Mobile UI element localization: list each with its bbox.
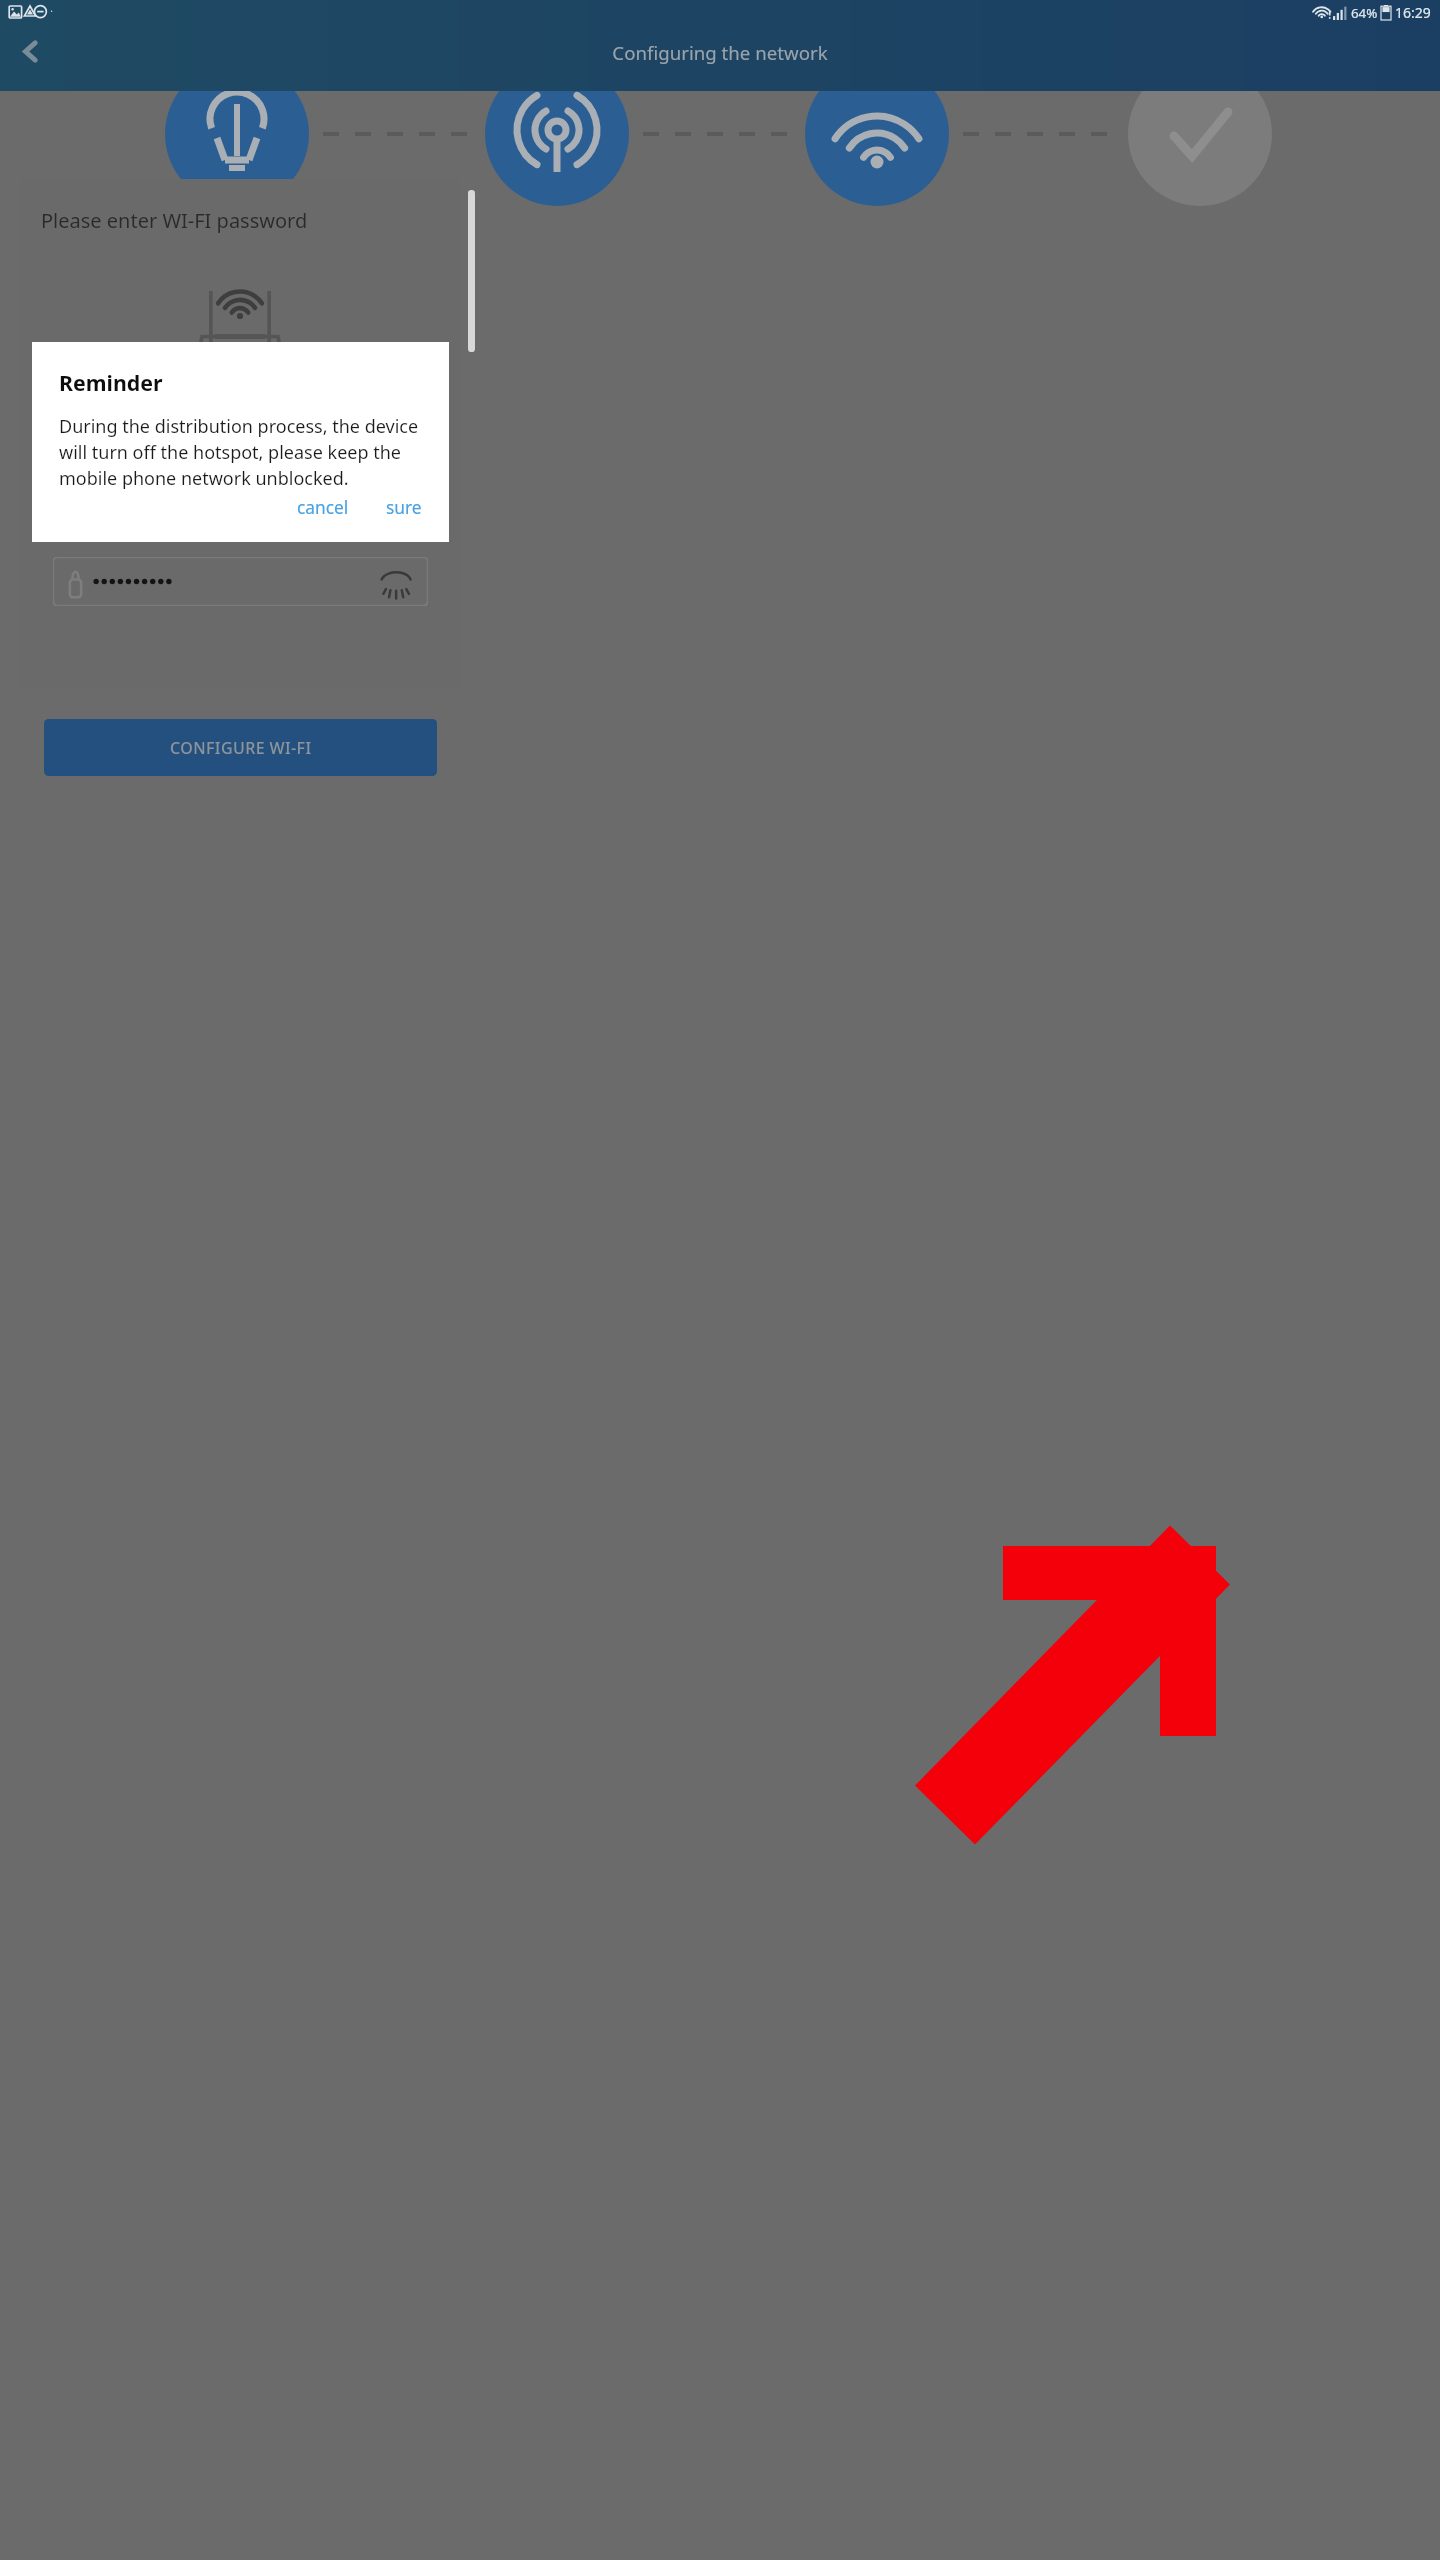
button[interactable]: cancel <box>290 491 356 522</box>
staticText: 16:29 <box>1395 3 1431 22</box>
button[interactable]: sure <box>379 491 429 522</box>
staticText: CONFIGURE WI-FI <box>170 737 312 759</box>
staticText: Please enter WI-FI password <box>41 207 308 234</box>
staticText: Configuring the network <box>612 40 828 65</box>
button[interactable]: Back <box>13 33 50 70</box>
staticText: During the distribution process, the dev… <box>59 414 426 491</box>
button[interactable]: CONFIGURE WI-FI <box>44 719 437 776</box>
staticText: cancel <box>297 495 349 518</box>
staticText: 64% <box>1351 4 1378 22</box>
staticText: Reminder <box>59 368 163 397</box>
button[interactable] <box>53 557 428 606</box>
staticText: sure <box>386 495 422 518</box>
